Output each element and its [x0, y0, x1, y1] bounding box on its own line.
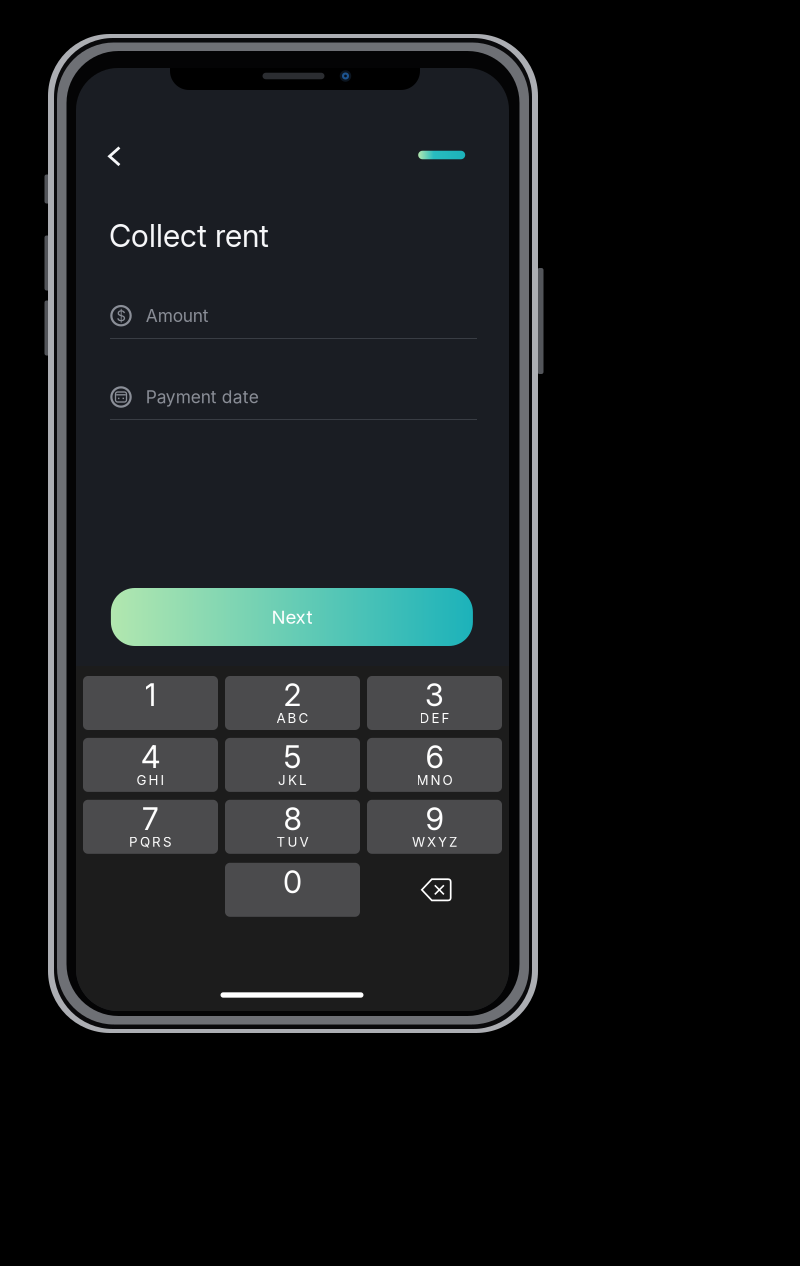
staticText: J K L: [278, 772, 307, 788]
staticText: Next: [271, 606, 312, 628]
button[interactable]: 8: [225, 800, 360, 854]
button[interactable]: Delete: [367, 863, 502, 917]
button[interactable]: 9: [367, 800, 502, 854]
staticText: 0: [283, 863, 302, 900]
button[interactable]: 5: [225, 738, 360, 792]
staticText: D E F: [419, 710, 449, 726]
staticText: A B C: [276, 710, 308, 726]
staticText: 2: [283, 677, 301, 714]
button[interactable]: 4: [83, 738, 218, 792]
button[interactable]: 7: [83, 800, 218, 854]
staticText: M N O: [416, 772, 452, 788]
button[interactable]: 6: [367, 738, 502, 792]
staticText: P Q R S: [129, 834, 172, 850]
button[interactable]: Step progress: [412, 140, 472, 170]
staticText: 7: [142, 800, 159, 837]
button[interactable]: 1: [83, 676, 218, 730]
staticText: G H I: [136, 772, 164, 788]
staticText: T U V: [276, 834, 308, 850]
staticText: Collect rent: [109, 217, 269, 254]
staticText: W X Y Z: [412, 834, 457, 850]
button[interactable]: $: [110, 296, 477, 336]
button[interactable]: Next: [111, 588, 473, 646]
staticText: $: [116, 307, 125, 325]
staticText: 4: [141, 738, 160, 776]
staticText: 5: [283, 738, 301, 776]
staticText: 9: [425, 800, 443, 837]
staticText: 8: [283, 800, 301, 837]
button[interactable]: 3: [367, 676, 502, 730]
button[interactable]: 2: [225, 676, 360, 730]
staticText: Amount: [146, 305, 209, 326]
staticText: Payment date: [146, 386, 259, 407]
button[interactable]: 0: [225, 863, 360, 917]
staticText: 6: [425, 738, 443, 776]
button[interactable]: Payment date: [110, 377, 477, 417]
staticText: 3: [425, 677, 444, 714]
staticText: 1: [144, 677, 156, 714]
button[interactable]: Back: [92, 134, 136, 178]
